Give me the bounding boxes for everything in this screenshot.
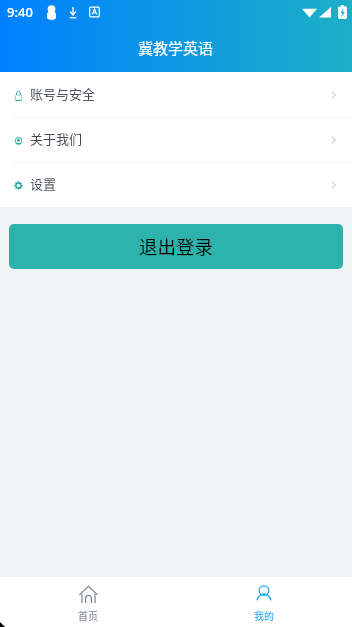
staticText: 冀教学英语 [138, 37, 214, 59]
staticText: 首页 [78, 608, 98, 622]
button[interactable]: 首页 [0, 577, 176, 627]
button[interactable]: 关于我们 [0, 118, 352, 162]
staticText: 我的 [254, 608, 274, 622]
button[interactable]: 账号与安全 [0, 73, 352, 117]
button[interactable]: 我的 [176, 577, 352, 627]
staticText: 账号与安全 [30, 84, 96, 103]
button[interactable]: 设置 [0, 163, 352, 207]
staticText: 9:40 [7, 3, 33, 21]
button[interactable]: 退出登录 [9, 224, 343, 269]
staticText: 设置 [30, 174, 57, 193]
staticText: 关于我们 [30, 129, 83, 148]
staticText: 退出登录 [139, 233, 214, 260]
